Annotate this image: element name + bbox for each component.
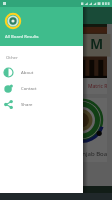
staticText: M	[90, 34, 104, 53]
staticText: All Board Results	[5, 34, 39, 40]
button[interactable]: M	[5, 24, 107, 94]
staticText: Contact	[21, 85, 37, 91]
button[interactable]: Share	[0, 96, 83, 112]
button[interactable]: About	[0, 64, 83, 80]
staticText: Matric Result	[88, 83, 107, 90]
staticText: About	[21, 69, 34, 75]
button[interactable]: App header	[0, 0, 83, 46]
button[interactable]: Contact	[0, 80, 83, 96]
staticText: Other	[6, 54, 18, 60]
staticText: Share	[21, 101, 33, 107]
staticText: Punjab Board	[75, 150, 107, 158]
button[interactable]: Punjab Board	[5, 98, 107, 162]
button[interactable]: Open navigation drawer	[5, 7, 22, 24]
